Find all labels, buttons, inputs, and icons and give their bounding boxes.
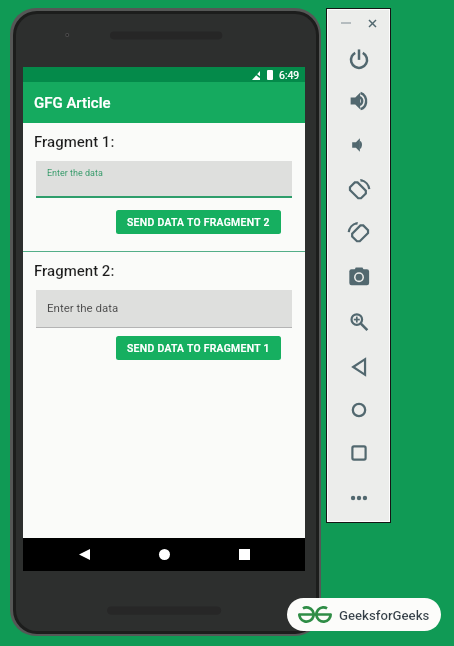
staticText: SEND DATA TO FRAGMENT 2	[127, 216, 270, 228]
button[interactable]: Enter the data	[36, 290, 292, 327]
button[interactable]: Home	[328, 389, 389, 431]
button[interactable]: GFG Article	[23, 82, 305, 123]
button[interactable]: Rotate right	[328, 211, 389, 253]
button[interactable]: Take screenshot	[328, 255, 389, 297]
staticText: Fragment 2:	[34, 262, 115, 280]
button[interactable]: More	[328, 477, 389, 519]
button[interactable]: Rotate left	[328, 168, 389, 210]
button[interactable]: Recent apps	[228, 538, 261, 571]
button[interactable]: Zoom	[328, 299, 389, 341]
staticText: Enter the data	[47, 301, 119, 314]
button[interactable]: Back	[328, 346, 389, 388]
button[interactable]: SEND DATA TO FRAGMENT 1	[116, 336, 281, 360]
button[interactable]: Back	[68, 538, 101, 571]
staticText: Enter the data	[47, 168, 103, 179]
button[interactable]: Overview	[328, 432, 389, 474]
staticText: GeeksforGeeks	[339, 608, 430, 623]
button[interactable]: Home	[148, 538, 181, 571]
staticText: Fragment 1:	[34, 133, 115, 151]
button[interactable]: SEND DATA TO FRAGMENT 2	[116, 210, 281, 234]
button[interactable]: Volume down	[328, 124, 389, 166]
staticText: GFG Article	[34, 94, 111, 112]
button[interactable]: Minimize	[336, 13, 356, 33]
button[interactable]: GeeksforGeeks	[287, 598, 441, 631]
staticText: SEND DATA TO FRAGMENT 1	[127, 342, 270, 354]
button[interactable]: Enter the data	[36, 161, 292, 196]
button[interactable]: Power	[328, 37, 389, 79]
button[interactable]: Volume up	[328, 80, 389, 122]
staticText: 6:49	[279, 69, 300, 81]
button[interactable]: Close	[362, 13, 382, 33]
